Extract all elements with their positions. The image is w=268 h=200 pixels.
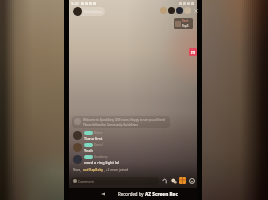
staticText: Grantbery: [94, 155, 108, 159]
button[interactable]: Send gift: [170, 177, 177, 184]
staticText: Recorded by: [118, 191, 144, 197]
button[interactable]: Nora,: [73, 168, 129, 172]
staticText: HostName: [84, 9, 102, 14]
staticText: need a ring light lol: [84, 160, 120, 165]
staticText: Daniel: [94, 143, 103, 147]
button[interactable]: Gifts: [179, 177, 186, 184]
staticText: m: [191, 49, 196, 55]
staticText: , +3 more joined: [104, 168, 129, 172]
button[interactable]: Emoji: [188, 177, 195, 184]
staticText: asd RapBaby: [83, 168, 104, 172]
button[interactable]: Viewer: [176, 7, 183, 14]
staticText: Nora,: [73, 168, 83, 172]
button[interactable]: Rank: [174, 18, 193, 29]
button[interactable]: Welcome to SpeakEasy LIVE room. Happy to…: [72, 116, 170, 128]
button[interactable]: Viewer: [184, 7, 191, 14]
staticText: Top3: [182, 24, 189, 28]
staticText: Rank: [182, 19, 189, 23]
button[interactable]: HostName: [73, 7, 105, 16]
button[interactable]: Viewer: [168, 7, 175, 14]
button[interactable]: Live: [189, 48, 197, 56]
staticText: Tiana first: [84, 136, 103, 141]
button[interactable]: Comment: [71, 177, 159, 185]
button[interactable]: Share: [161, 177, 168, 184]
staticText: AZ Screen Rec: [145, 191, 178, 197]
button[interactable]: Fishee: [73, 131, 201, 141]
button[interactable]: Close: [193, 8, 199, 14]
button[interactable]: Back: [100, 191, 106, 197]
staticText: Fishee: [94, 131, 103, 135]
staticText: Welcome to SpeakEasy LIVE room. Happy to…: [83, 118, 168, 126]
staticText: 9:41: [71, 1, 79, 6]
button[interactable]: Daniel: [73, 143, 201, 153]
staticText: Yeah: [84, 148, 93, 153]
staticText: Comment: [78, 179, 94, 184]
button[interactable]: Grantbery: [73, 155, 201, 165]
button[interactable]: Viewer: [160, 7, 167, 14]
